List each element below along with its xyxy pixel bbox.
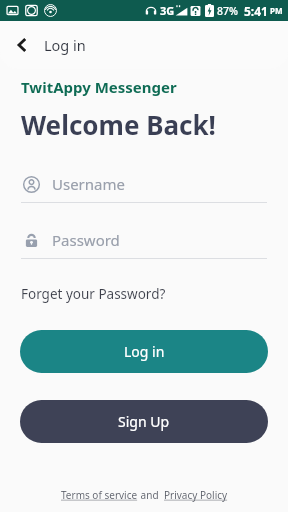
staticText: Log in (44, 35, 86, 55)
staticText: 5:41 (244, 3, 268, 19)
button[interactable]: Back (0, 23, 44, 67)
staticText: Username (52, 174, 125, 194)
button[interactable]: Username (21, 174, 267, 203)
staticText: Privacy Policy (164, 488, 228, 502)
staticText: Welcome Back! (21, 107, 216, 142)
button[interactable]: Terms of service (61, 488, 138, 502)
staticText: 87% (217, 4, 238, 18)
staticText: 3G (160, 3, 175, 18)
button[interactable]: Password (21, 230, 267, 259)
button[interactable]: Log in (20, 330, 268, 373)
staticText: Terms of service (61, 488, 138, 502)
staticText: Log in (124, 342, 165, 361)
staticText: and (138, 488, 164, 502)
staticText: Forget your Password? (21, 285, 166, 303)
button[interactable]: Sign Up (20, 400, 268, 443)
button[interactable]: Forget your Password? (21, 285, 166, 303)
staticText: TwitAppy Messenger (21, 77, 177, 97)
staticText: Sign Up (118, 412, 170, 431)
button[interactable]: Privacy Policy (164, 488, 228, 502)
staticText: Password (52, 230, 120, 250)
staticText: PM (270, 5, 283, 16)
